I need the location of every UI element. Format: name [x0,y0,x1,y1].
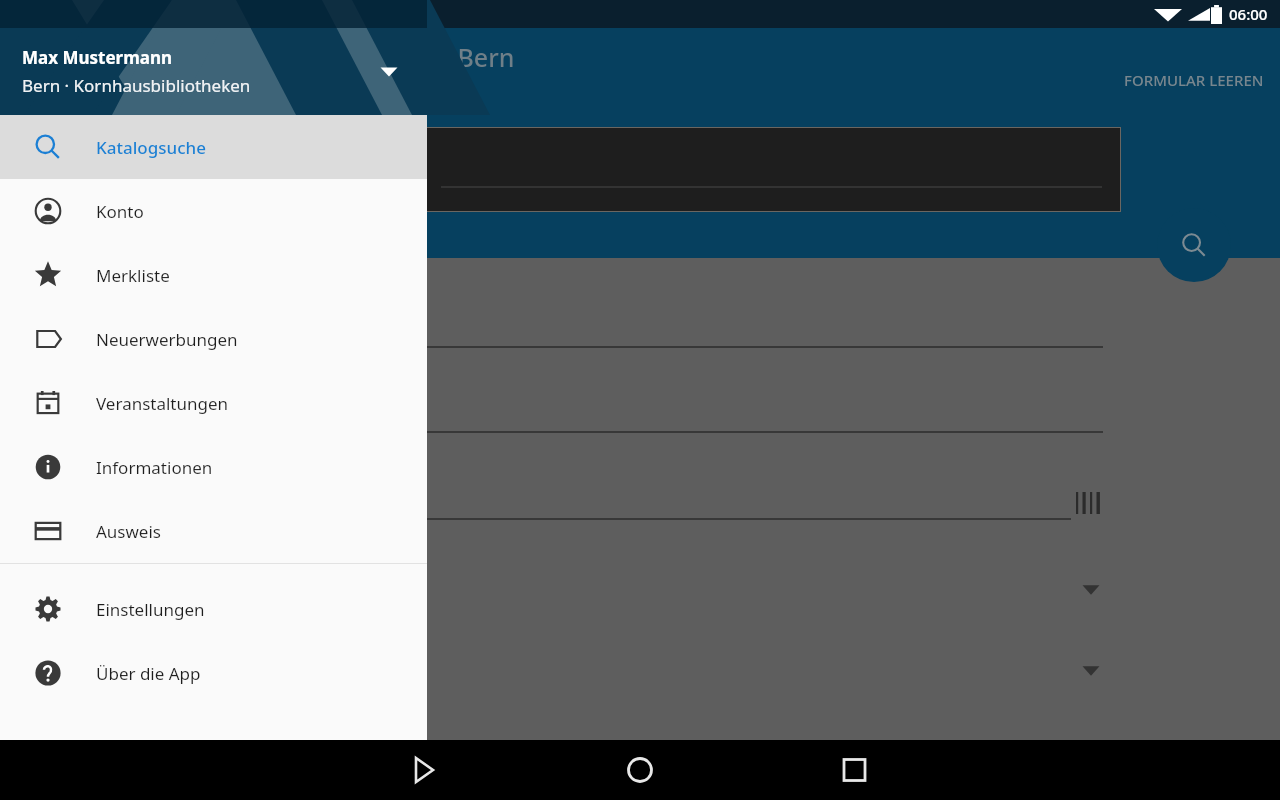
staticText: Veranstaltungen [96,392,229,415]
staticText: Ausweis [96,520,161,543]
staticText: FORMULAR LEEREN [1124,70,1264,90]
staticText: Bern · Kornhausbibliotheken [22,74,251,97]
staticText: Katalogsuche [96,136,206,159]
staticText: 06:00 [1229,4,1268,24]
button[interactable]: FORMULAR LEEREN [1108,60,1280,100]
staticText: Max Mustermann [22,46,173,69]
button[interactable]: Konto wechseln [365,48,413,96]
staticText: Informationen [96,456,213,479]
button[interactable]: Suchen [1157,208,1231,282]
button[interactable]: Konto [0,179,427,243]
staticText: Merkliste [96,264,170,287]
staticText: Über die App [96,662,201,685]
staticText: Katalogsuchen [300,78,412,100]
staticText: Einstellungen [96,598,205,621]
button[interactable]: Merkliste [0,243,427,307]
staticText: Konto [96,200,144,223]
button[interactable]: Katalogsuche [0,115,427,179]
button[interactable]: Max Mustermann [0,28,427,115]
button[interactable]: Ausweis [0,499,427,563]
button[interactable]: Über die App [0,641,427,705]
staticText: Neuerwerbungen [96,328,238,351]
button[interactable]: Veranstaltungen [0,371,427,435]
button[interactable]: Einstellungen [0,577,427,641]
button[interactable]: Informationen [0,435,427,499]
staticText: Bibliotheken Bern [300,40,515,74]
button[interactable]: Neuerwerbungen [0,307,427,371]
